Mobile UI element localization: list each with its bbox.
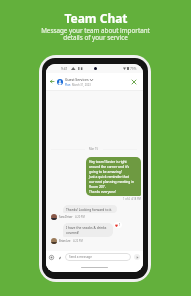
button[interactable]: Send xyxy=(134,254,140,260)
staticText: 1 xyxy=(119,223,121,227)
staticText: 1 of 4 4:18 PM xyxy=(123,197,141,201)
staticText: 9:41 xyxy=(61,67,68,71)
staticText: Send a message xyxy=(69,255,92,259)
button[interactable]: Add attachment xyxy=(48,254,55,261)
staticText: 79% xyxy=(130,67,137,71)
button[interactable]: Send a message xyxy=(65,253,131,261)
button[interactable]: Hey team! Easter is right around the cor… xyxy=(86,157,141,196)
staticText: Message your team about important detail… xyxy=(41,26,150,42)
button[interactable]: Quick reply xyxy=(56,254,63,261)
staticText: 4:22 PM xyxy=(73,239,83,243)
staticText: Thanks! Looking forward to it. xyxy=(66,207,113,211)
staticText: 4:20 PM xyxy=(75,215,85,219)
staticText: I have the snacks & drinks covered! xyxy=(66,225,107,235)
staticText: Plan xyxy=(65,83,71,87)
staticText: Team Chat xyxy=(64,10,128,26)
button[interactable]: I have the snacks & drinks covered! xyxy=(63,223,113,237)
staticText: March 31, 2023 xyxy=(72,83,91,87)
staticText: Guest Services xyxy=(65,77,89,82)
button[interactable]: Back xyxy=(48,78,55,85)
staticText: Mar 15 xyxy=(89,147,99,151)
staticText: Hey team! Easter is right around the cor… xyxy=(89,159,135,194)
staticText: Brian Lee xyxy=(59,239,71,243)
button[interactable]: Close xyxy=(130,78,138,86)
staticText: Sara Driver xyxy=(59,215,73,219)
button[interactable]: Thanks! Looking forward to it. xyxy=(63,205,117,213)
